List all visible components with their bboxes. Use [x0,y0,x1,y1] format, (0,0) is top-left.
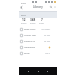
staticText: Mar 2 [45,52,51,55]
staticText: Sapiens xx [24,40,35,43]
staticText: 9:30 [21,1,26,4]
staticText: 3d ago [44,40,51,43]
staticText: Dune [24,52,30,55]
staticText: Library [33,5,43,9]
staticText: 348 [30,18,36,22]
staticText: 2h ago [44,34,51,37]
button[interactable]: Back [19,5,24,10]
staticText: notes [39,22,44,25]
button[interactable]: Deep Work [19,26,57,32]
button[interactable]: More options [53,5,57,9]
staticText: 128 pages [41,28,51,31]
staticText: 7 [41,18,43,22]
staticText: pages [30,22,36,25]
staticText: Atomic Hab [24,34,36,37]
staticText: 12 [22,18,26,22]
button[interactable]: Meditation [19,44,57,50]
button[interactable]: Sapiens xx [19,38,57,44]
staticText: Meditation [24,46,36,49]
staticText: Sort [21,13,26,16]
button[interactable]: Dune [19,50,57,56]
staticText: Deep Work [24,28,36,31]
staticText: books [21,22,27,25]
button[interactable]: Search [49,5,53,9]
button[interactable]: Atomic Hab [19,32,57,38]
